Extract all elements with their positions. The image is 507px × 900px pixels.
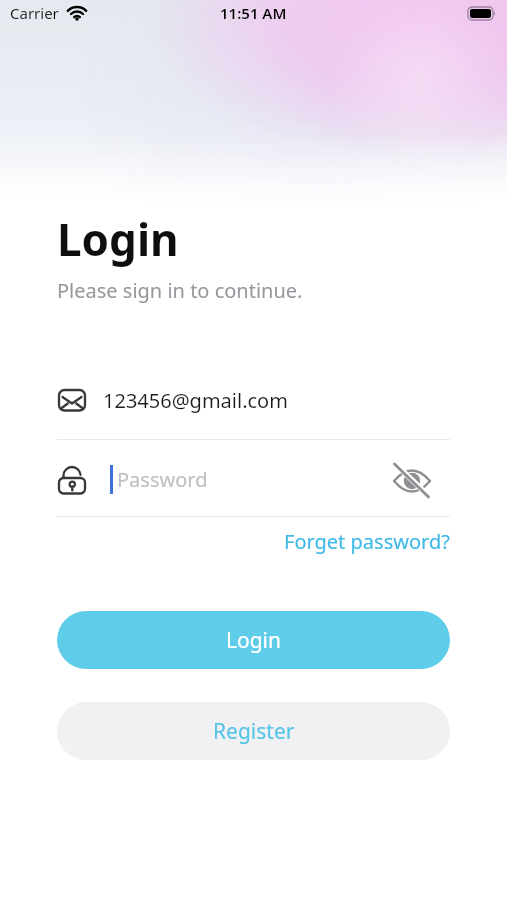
staticText: Login <box>57 209 179 269</box>
staticText: Register <box>213 717 295 746</box>
button[interactable]: Register <box>57 702 450 760</box>
staticText: Carrier <box>10 3 59 23</box>
button[interactable]: Password <box>57 459 387 499</box>
button[interactable]: Login <box>57 611 450 669</box>
staticText: Please sign in to continue. <box>57 277 303 304</box>
staticText: Password <box>117 466 208 493</box>
button[interactable]: Forget password? <box>284 528 450 555</box>
staticText: 11:51 AM <box>220 3 287 23</box>
button[interactable]: 123456@gmail.com <box>57 384 450 416</box>
button[interactable] <box>391 462 431 499</box>
staticText: 123456@gmail.com <box>103 387 288 414</box>
staticText: Login <box>226 626 282 655</box>
